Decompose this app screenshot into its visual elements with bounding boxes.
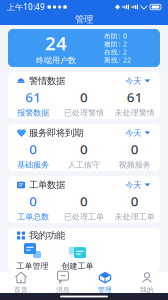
button[interactable]: 工单管理 [10,243,55,271]
staticText: 警情数据 [29,75,65,87]
staticText: 工单数据 [29,179,65,191]
staticText: 我的功能 [29,230,65,241]
staticText: 管理 [98,286,112,294]
button[interactable]: 今天 [125,178,151,192]
staticText: 61 [25,88,41,106]
staticText: 0 [80,88,88,106]
button[interactable]: 今天 [125,74,151,88]
button[interactable]: 创建工单 [55,243,100,271]
staticText: 创建工单 [61,261,93,271]
staticText: 工单总数 [17,212,49,222]
staticText: 0 [80,192,88,210]
button[interactable]: 首页 [0,268,42,297]
staticText: 已处理工单 [64,212,104,222]
staticText: 基础服务 [17,160,49,170]
staticText: 首页 [14,286,28,294]
staticText: 0 [131,192,139,210]
staticText: 61 [127,88,143,106]
staticText: 视频服务 [119,160,151,170]
staticText: 离线: [104,56,120,64]
staticText: 撤防: [104,40,120,48]
staticText: 上午10:49 [7,2,45,12]
staticText: 终端用户数 [36,55,76,65]
staticText: 管理 [75,14,93,25]
staticText: 我的 [140,286,154,294]
staticText: 服务即将到期 [29,127,83,139]
staticText: 今天 [125,128,141,138]
staticText: 布防: [104,32,120,40]
staticText: 0 [29,192,37,210]
staticText: 0 [80,140,88,158]
staticText: 今天 [125,180,141,190]
staticText: 24 [45,31,67,55]
button[interactable]: 消息 [42,268,84,297]
staticText: 已处理警情 [64,108,104,118]
staticText: 消息 [56,286,70,294]
staticText: 0 [131,140,139,158]
button[interactable]: 今天 [125,126,151,140]
button[interactable]: 我的 [126,268,168,297]
staticText: 0 [29,140,37,158]
staticText: 未处理工单 [115,212,155,222]
staticText: 2 [123,40,127,48]
staticText: 22 [123,56,131,64]
staticText: 工单管理 [16,261,48,271]
staticText: 报警数据 [17,108,49,118]
staticText: 在线: [104,48,120,56]
staticText: 0 [123,32,127,40]
staticText: 今天 [125,76,141,86]
button[interactable]: 管理 [84,268,126,297]
staticText: 人工值守 [68,160,100,170]
staticText: 2 [123,48,127,56]
staticText: 未处理警情 [115,108,155,118]
